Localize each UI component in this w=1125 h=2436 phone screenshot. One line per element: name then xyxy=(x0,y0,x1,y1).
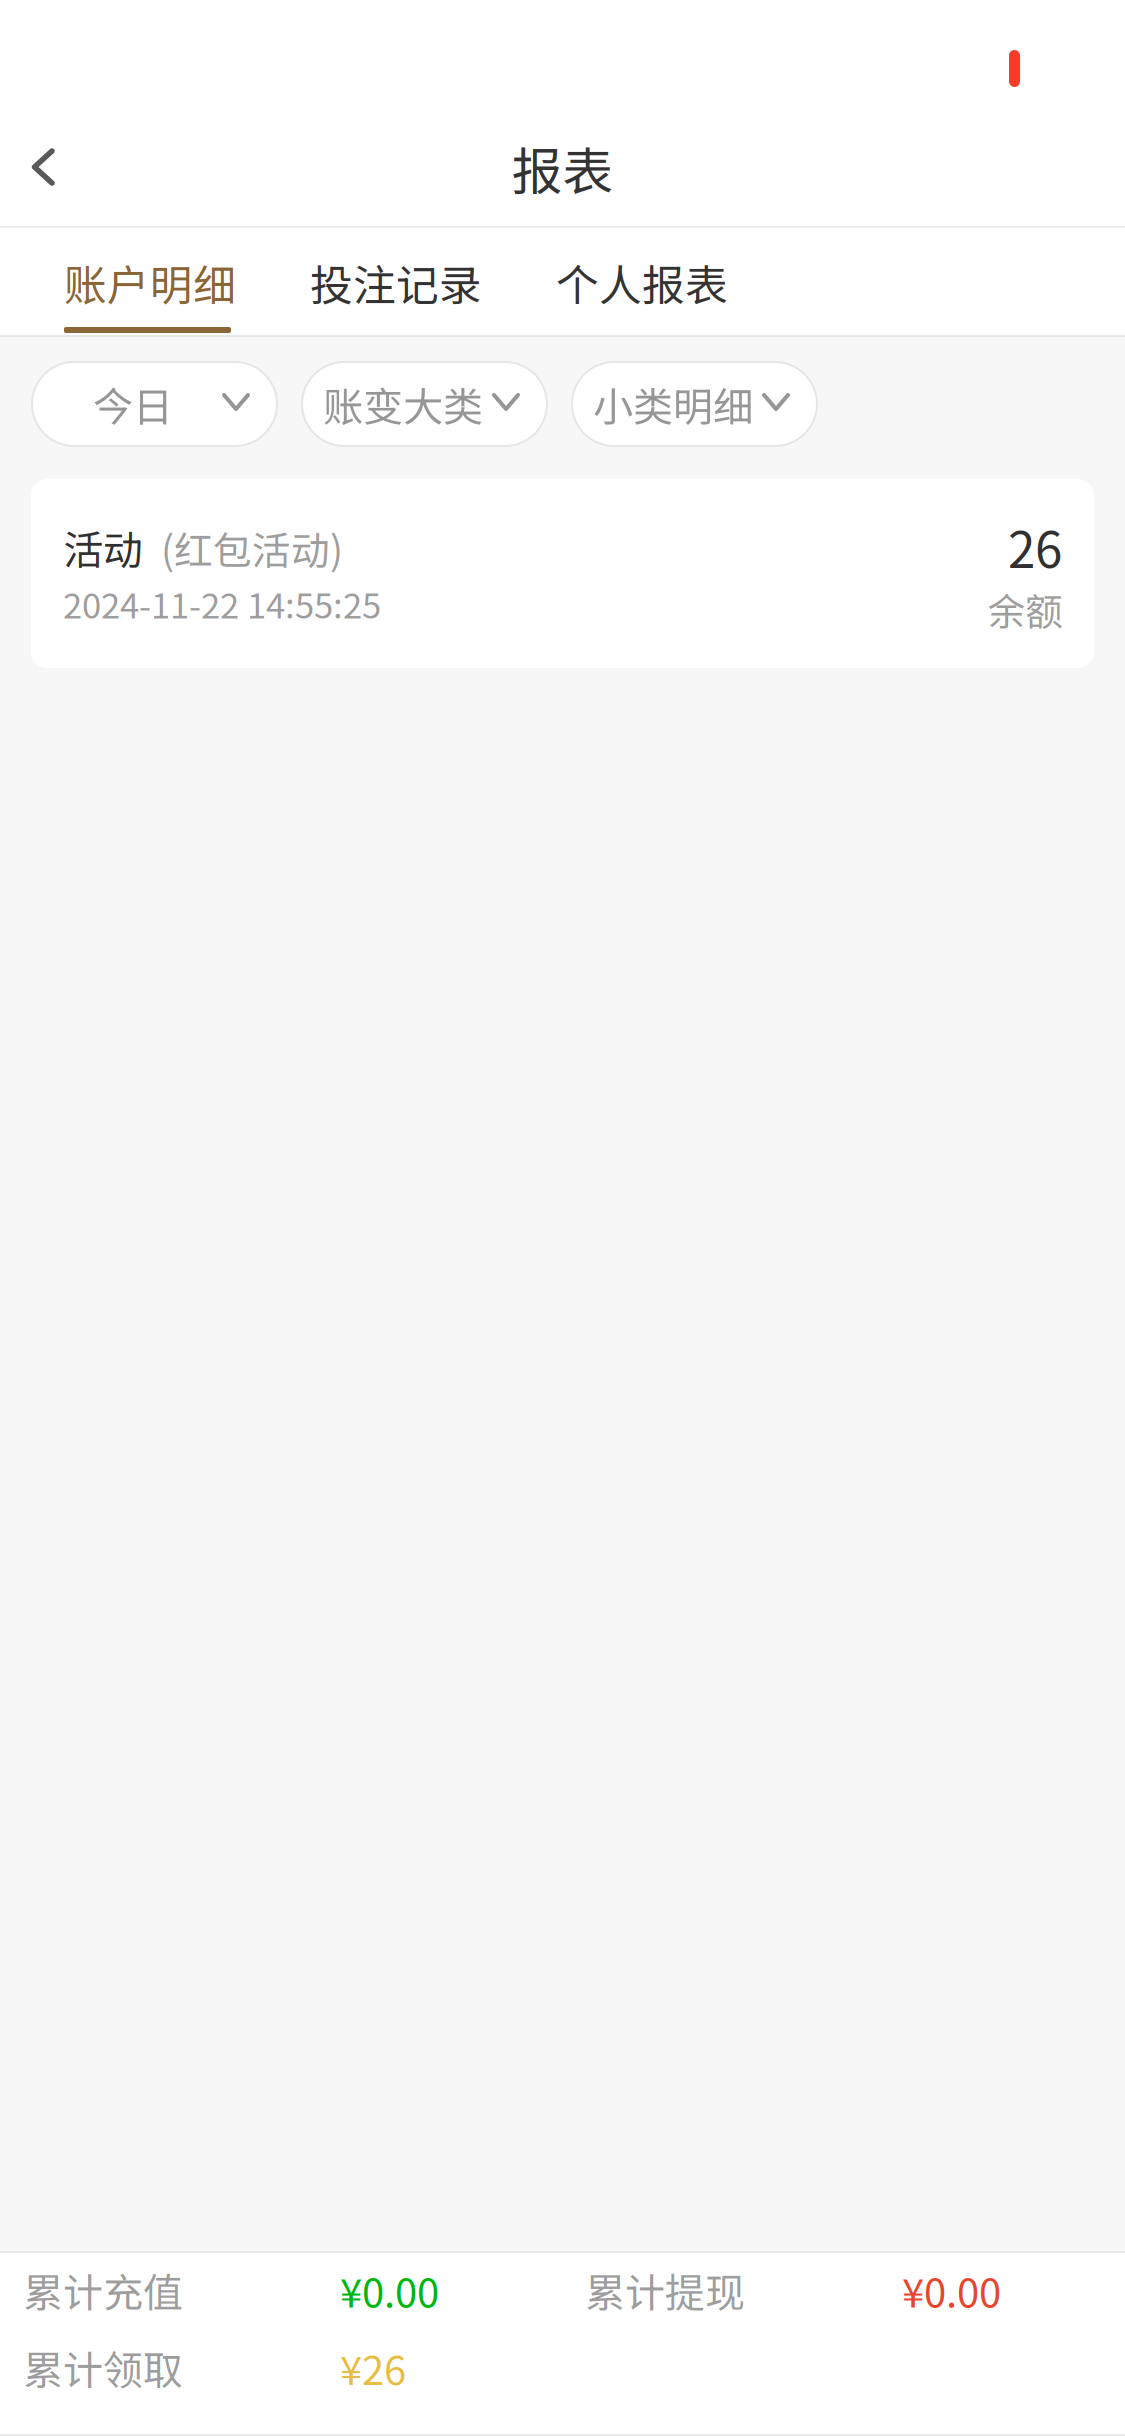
staticText: 余额 xyxy=(988,582,1062,636)
staticText: ¥26 xyxy=(340,2338,406,2396)
staticText: 2024-11-22 14:55:25 xyxy=(63,578,381,629)
staticText: 账户明细 xyxy=(64,252,236,313)
staticText: 累计充值 xyxy=(23,2261,183,2319)
staticText: 活动 xyxy=(63,518,143,576)
staticText: 个人报表 xyxy=(556,252,728,313)
button[interactable]: 个人报表 xyxy=(519,230,765,335)
button[interactable]: 账变大类 xyxy=(302,362,547,446)
staticText: 小类明细 xyxy=(593,375,753,433)
staticText: ¥0.00 xyxy=(902,2261,1001,2319)
button[interactable]: 账户明细 xyxy=(0,230,273,335)
staticText: 26 xyxy=(1008,511,1062,582)
button[interactable]: 小类明细 xyxy=(572,362,817,446)
staticText: (红包活动) xyxy=(143,520,343,576)
staticText: 累计领取 xyxy=(23,2338,183,2396)
staticText: ¥0.00 xyxy=(340,2261,439,2319)
button[interactable]: 投注记录 xyxy=(273,230,519,335)
button[interactable]: 活动 xyxy=(31,479,1094,668)
button[interactable]: Back xyxy=(0,123,93,211)
staticText: 账变大类 xyxy=(323,375,483,433)
button[interactable]: 今日 xyxy=(32,362,277,446)
staticText: 累计提现 xyxy=(585,2261,745,2319)
staticText: 投注记录 xyxy=(310,252,482,313)
staticText: 报表 xyxy=(511,131,613,205)
staticText: 今日 xyxy=(93,375,173,433)
